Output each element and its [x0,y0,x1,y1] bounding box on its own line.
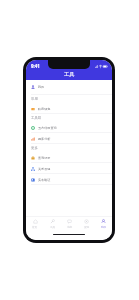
staticText: 查询记录 [38,156,51,160]
button[interactable]: 消息 [61,217,78,229]
button[interactable]: 工具 [44,217,61,229]
staticText: 常用 [31,97,38,101]
staticText: 工具 [50,225,56,228]
button[interactable]: 题库分析 [26,133,112,144]
staticText: 发现 [84,225,90,228]
staticText: 工具箱 [31,116,42,120]
staticText: 工具 [64,71,75,78]
staticText: 关系发现 [38,167,51,171]
button[interactable]: 私房钱包 [26,103,112,114]
staticText: 五方信用查询 [38,126,57,130]
staticText: 9:41 [31,63,40,69]
staticText: 首页 [32,225,38,228]
staticText: 我的 [38,85,45,89]
button[interactable]: 发现 [78,217,95,229]
staticText: 私房钱包 [38,107,51,111]
button[interactable]: 首页 [26,217,44,229]
button[interactable]: 关系发现 [26,163,112,174]
button[interactable]: 查询记录 [26,152,112,163]
button[interactable]: 五方信用查询 [26,122,112,133]
staticText: 消息 [67,225,73,228]
button[interactable]: 我的 [95,217,112,229]
staticText: 实名验证 [38,178,51,182]
button[interactable]: 实名验证 [26,174,112,185]
button[interactable]: 我的 [26,80,112,95]
staticText: 更多 [31,146,38,150]
staticText: 我的 [101,225,107,228]
staticText: 题库分析 [38,137,51,141]
